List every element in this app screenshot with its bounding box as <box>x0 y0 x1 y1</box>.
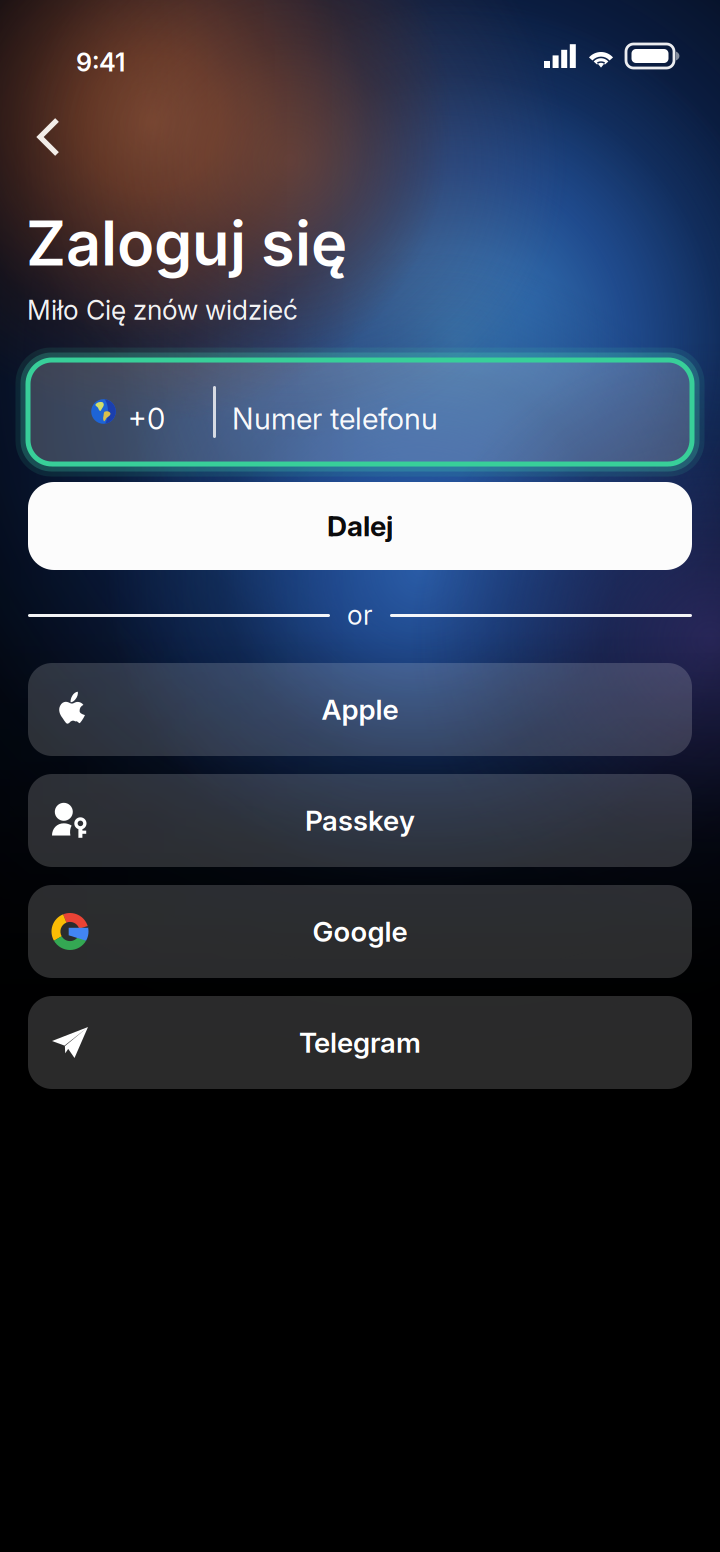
button[interactable]: Apple <box>28 663 692 756</box>
button[interactable]: Back <box>23 106 85 168</box>
staticText: Zaloguj się <box>26 206 347 280</box>
button[interactable]: +0 <box>28 360 692 464</box>
staticText: Dalej <box>327 509 393 543</box>
staticText: Google <box>312 915 407 948</box>
staticText: Numer telefonu <box>232 401 438 436</box>
staticText: or <box>347 599 373 631</box>
button[interactable]: Dalej <box>28 482 692 570</box>
button[interactable]: Passkey <box>28 774 692 867</box>
staticText: Telegram <box>299 1026 421 1059</box>
staticText: 9:41 <box>76 47 125 78</box>
button[interactable]: Google <box>28 885 692 978</box>
staticText: Miło Cię znów widzieć <box>27 294 298 326</box>
staticText: Passkey <box>305 804 415 837</box>
button[interactable]: Telegram <box>28 996 692 1089</box>
staticText: Apple <box>321 693 398 726</box>
staticText: +0 <box>128 401 165 436</box>
